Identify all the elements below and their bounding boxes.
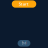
button[interactable]: End — [18, 40, 30, 47]
staticText: End — [21, 41, 26, 45]
button[interactable]: Start — [12, 0, 36, 8]
staticText: Start — [19, 1, 29, 7]
